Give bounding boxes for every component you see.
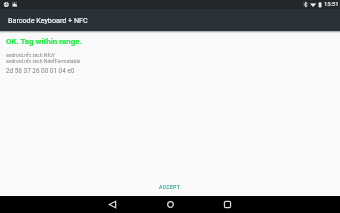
button[interactable]: Back (97, 196, 127, 213)
staticText: android.nfc.tech.NfcV (6, 52, 55, 58)
button[interactable]: Home (155, 196, 185, 213)
button[interactable]: Recent apps (212, 196, 242, 213)
staticText: 2d 56 37 26 00 01 04 e0 (6, 67, 75, 75)
staticText: Barcode Keyboard + NFC (8, 16, 88, 24)
staticText: android.nfc.tech.NdefFormatable (6, 58, 81, 64)
staticText: ACCEPT (159, 184, 181, 190)
button[interactable]: ACCEPT (153, 182, 187, 192)
staticText: 15:51 (324, 1, 339, 8)
staticText: OK. Tag within range. (6, 37, 82, 46)
